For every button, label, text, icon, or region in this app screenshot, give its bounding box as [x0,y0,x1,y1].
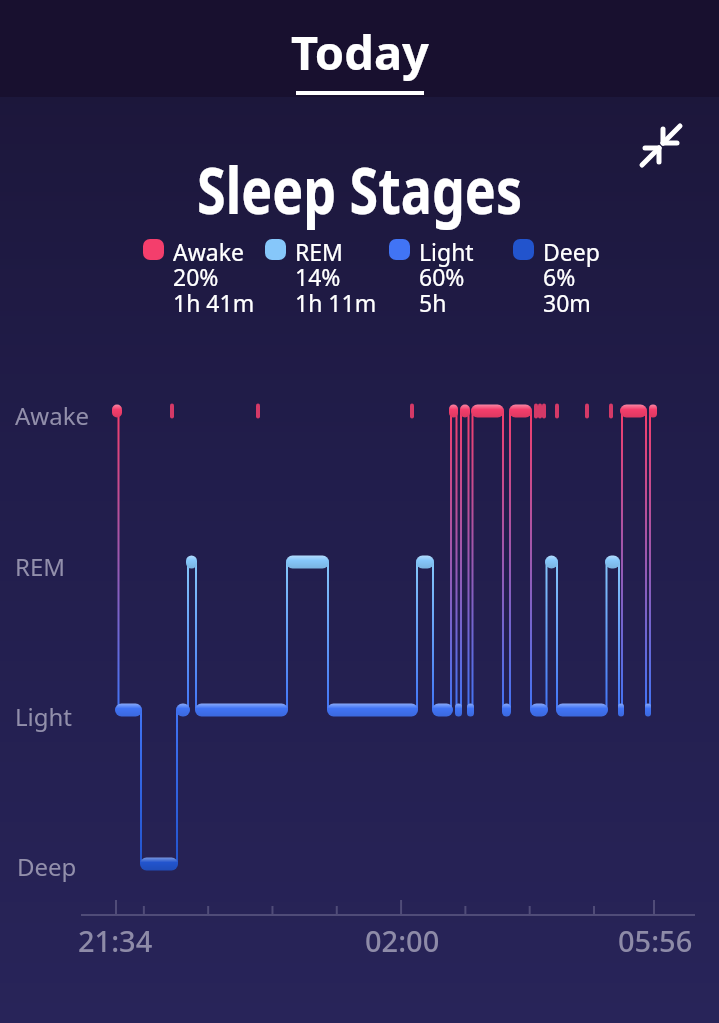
staticText: Light [419,236,474,267]
staticText: Light [15,700,73,733]
staticText: REM [15,550,66,583]
staticText: Today [291,20,429,84]
staticText: Deep [17,850,77,883]
staticText: 21:34 [78,921,153,960]
staticText: 05:56 [618,921,693,960]
staticText: Deep [543,236,600,267]
staticText: 1h 41m [173,287,255,318]
staticText: 14% [295,261,341,292]
staticText: 5h [419,287,447,318]
staticText: 60% [419,261,465,292]
staticText: Awake [173,236,244,267]
staticText: 30m [543,287,591,318]
staticText: Awake [15,399,90,432]
staticText: Sleep Stages [0,144,719,233]
staticText: 02:00 [365,921,440,960]
staticText: 1h 11m [295,287,377,318]
staticText: 6% [543,261,576,292]
staticText: 20% [173,261,219,292]
button[interactable] [631,113,693,175]
button[interactable]: Today [291,20,429,97]
staticText: REM [295,236,343,267]
